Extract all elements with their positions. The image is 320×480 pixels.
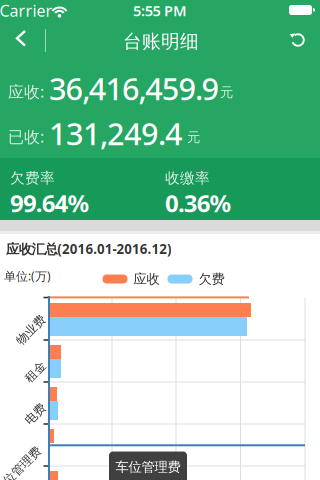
staticText: 台账明细 [123, 30, 199, 53]
staticText: 元 [220, 84, 233, 100]
staticText: 欠费 [198, 271, 224, 287]
staticText: 应收汇总(2016.01-2016.12) [6, 240, 172, 258]
staticText: 131,249.4 [49, 113, 183, 154]
staticText: 电费 [23, 407, 47, 421]
staticText: 租金 [23, 365, 47, 379]
staticText: 收缴率 [165, 169, 210, 187]
button[interactable]: Back [0, 20, 40, 58]
button[interactable]: 应收 [102, 271, 159, 287]
staticText: 0.36% [165, 187, 232, 219]
staticText: 单位:(万) [4, 268, 51, 284]
staticText: 已收: [8, 126, 44, 147]
staticText: Carrier [0, 0, 52, 21]
staticText: 车位管理费 [115, 459, 180, 475]
staticText: 欠费率 [10, 169, 55, 187]
staticText: 5:55 PM [133, 1, 187, 20]
staticText: 36,416,459.9 [49, 68, 220, 109]
staticText: 元 [187, 129, 200, 145]
staticText: 应收: [8, 81, 44, 102]
staticText: 物业费 [13, 323, 49, 337]
staticText: 车位管理费 [0, 463, 48, 477]
button[interactable]: Refresh [279, 21, 317, 59]
staticText: 99.64% [10, 187, 89, 219]
staticText: 应收 [133, 271, 159, 287]
button[interactable]: 欠费 [167, 271, 224, 287]
